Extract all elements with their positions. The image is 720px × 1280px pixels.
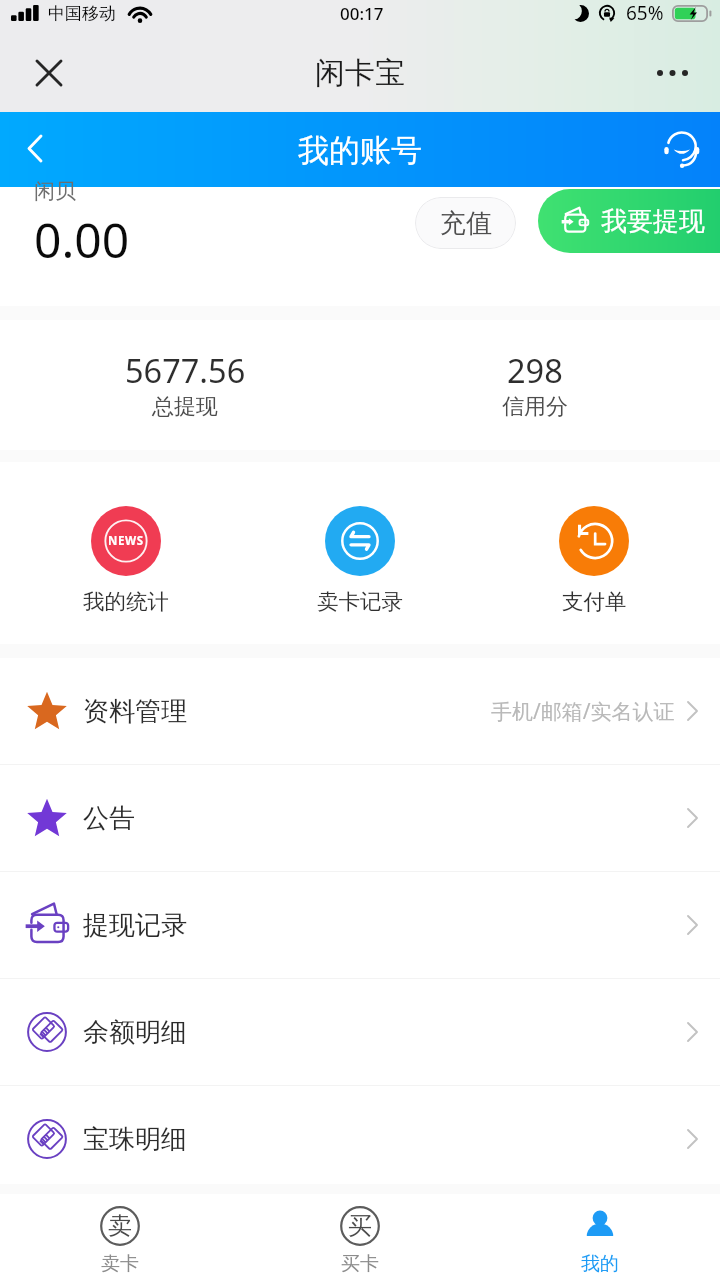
staticText: 公告 xyxy=(83,802,135,835)
staticText: 298 xyxy=(507,348,563,392)
staticText: 65% xyxy=(626,0,664,26)
staticText: 宝珠明细 xyxy=(83,1123,187,1156)
staticText: 0.00 xyxy=(34,207,130,272)
staticText: 买卡 xyxy=(341,1252,379,1276)
button[interactable]: 卖卡记录 xyxy=(252,506,468,615)
staticText: 充值 xyxy=(440,207,492,240)
staticText: 卖卡 xyxy=(101,1252,139,1276)
button[interactable]: 298 xyxy=(360,348,710,421)
staticText: 总提现 xyxy=(152,393,218,421)
staticText: NEWS xyxy=(108,533,144,549)
staticText: 我的账号 xyxy=(298,131,422,170)
staticText: 00:17 xyxy=(340,2,384,25)
staticText: 我的统计 xyxy=(83,588,169,615)
button[interactable]: 支付单 xyxy=(486,506,702,615)
button[interactable]: 提现记录 xyxy=(0,872,720,978)
button[interactable]: 公告 xyxy=(0,765,720,871)
staticText: 支付单 xyxy=(562,588,627,615)
staticText: 我的 xyxy=(581,1252,619,1276)
button[interactable]: 我的 xyxy=(480,1194,720,1280)
button[interactable]: NEWS xyxy=(18,506,234,615)
staticText: 提现记录 xyxy=(83,909,187,942)
button[interactable]: 充值 xyxy=(415,197,516,249)
button[interactable]: 资料管理 xyxy=(0,658,720,764)
staticText: 闲卡宝 xyxy=(315,54,405,92)
button[interactable]: More options xyxy=(648,49,696,97)
button[interactable]: 买 xyxy=(240,1194,480,1280)
button[interactable]: Back xyxy=(10,124,59,173)
button[interactable]: 卖 xyxy=(0,1194,240,1280)
button[interactable]: 宝珠明细 xyxy=(0,1086,720,1192)
staticText: 信用分 xyxy=(502,393,568,421)
button[interactable]: 我要提现 xyxy=(538,189,720,253)
staticText: 我要提现 xyxy=(601,205,705,238)
button[interactable]: Close xyxy=(25,49,73,97)
staticText: 买 xyxy=(348,1211,372,1241)
staticText: 5677.56 xyxy=(125,348,246,392)
staticText: 闲贝 xyxy=(34,178,76,204)
button[interactable]: 余额明细 xyxy=(0,979,720,1085)
staticText: 中国移动 xyxy=(48,3,116,24)
button[interactable]: Customer service xyxy=(657,125,706,174)
staticText: 手机/邮箱/实名认证 xyxy=(491,697,675,726)
staticText: 卖 xyxy=(108,1211,132,1241)
staticText: 资料管理 xyxy=(83,695,187,728)
button[interactable]: 5677.56 xyxy=(10,348,360,421)
staticText: 余额明细 xyxy=(83,1016,187,1049)
staticText: 卖卡记录 xyxy=(317,588,403,615)
